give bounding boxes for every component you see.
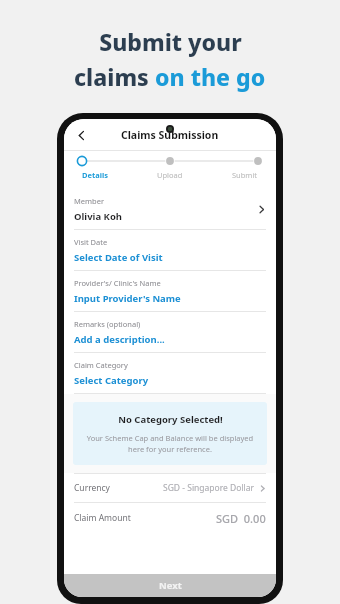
button[interactable]: Provider's/ Clinic's Name <box>64 271 276 311</box>
button[interactable]: Currency <box>64 474 276 502</box>
button[interactable]: Back <box>68 122 94 148</box>
staticText: Currency <box>74 482 110 494</box>
staticText: Next <box>159 579 182 592</box>
staticText: SGD - Singapore Dollar <box>163 482 255 494</box>
button[interactable]: Visit Date <box>64 230 276 270</box>
staticText: Select Category <box>74 374 149 387</box>
button[interactable]: Claim Amount <box>64 503 276 533</box>
button[interactable]: Submit <box>204 170 272 180</box>
staticText: Submit <box>232 170 258 180</box>
staticText: Upload <box>157 170 183 180</box>
staticText: Submit your <box>99 26 242 57</box>
staticText: Claim Amount <box>74 512 131 524</box>
staticText: Select Date of Visit <box>74 251 163 264</box>
staticText: SGD 0.00 <box>216 511 266 526</box>
button[interactable]: Details <box>68 170 136 180</box>
staticText: Olivia Koh <box>74 210 123 223</box>
button[interactable]: Remarks (optional) <box>64 312 276 352</box>
staticText: Claim Category <box>74 360 128 370</box>
staticText: on the go <box>155 61 266 92</box>
staticText: Claims Submission <box>121 128 219 142</box>
staticText: Add a description... <box>74 333 165 346</box>
staticText: Input Provider's Name <box>74 292 181 305</box>
staticText: Your Scheme Cap and Balance will be disp… <box>85 433 255 454</box>
staticText: Member <box>74 196 104 206</box>
staticText: Provider's/ Clinic's Name <box>74 278 161 288</box>
staticText: Visit Date <box>74 237 108 247</box>
button[interactable]: Member <box>64 189 276 229</box>
button[interactable]: Upload <box>136 170 204 180</box>
staticText: Details <box>82 170 108 180</box>
button[interactable]: Claim Category <box>64 353 276 393</box>
staticText: No Category Selected! <box>118 413 223 426</box>
staticText: claims <box>74 61 155 92</box>
button[interactable]: Next <box>64 574 276 597</box>
staticText: Remarks (optional) <box>74 319 141 329</box>
